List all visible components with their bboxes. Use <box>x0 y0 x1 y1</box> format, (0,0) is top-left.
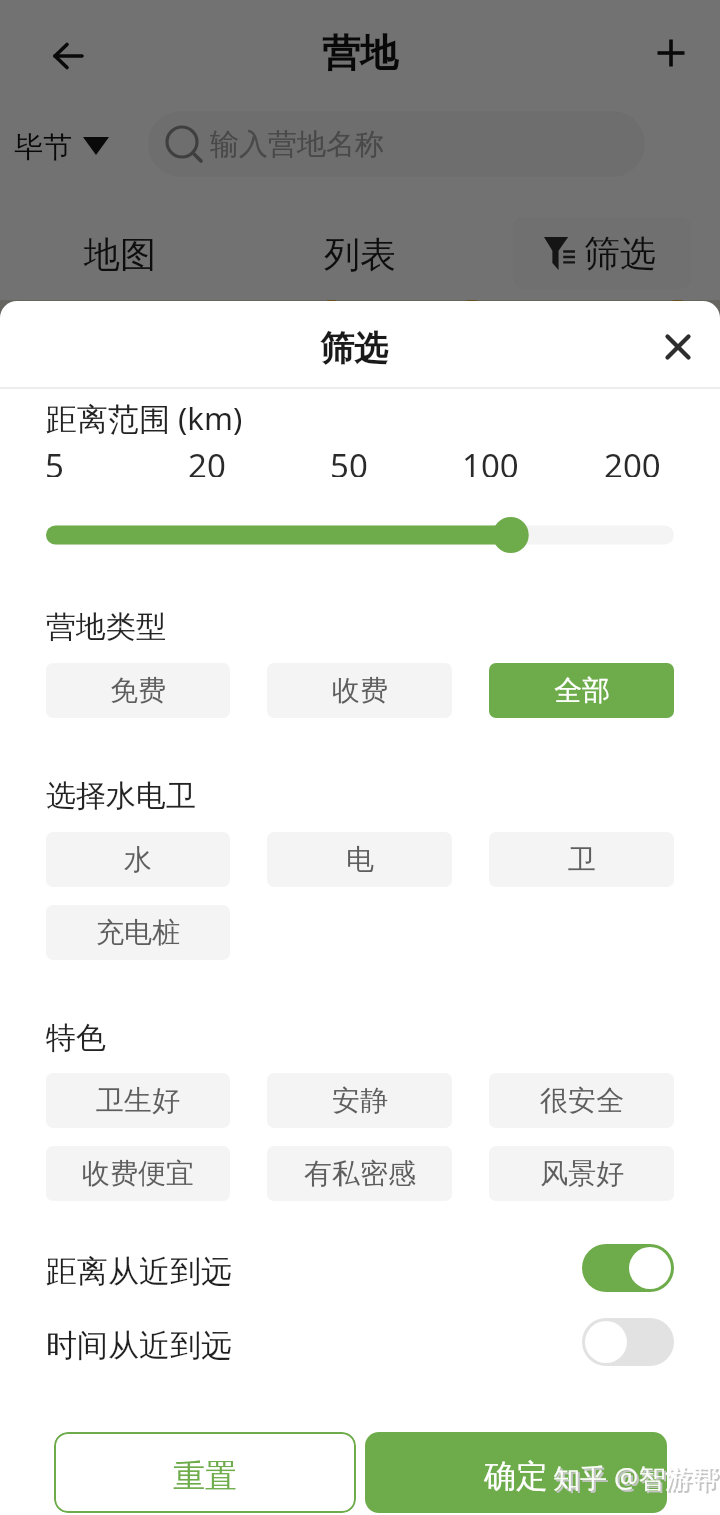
button[interactable]: 输入营地名称 <box>148 111 645 177</box>
staticText: 收费便宜 <box>82 1156 194 1191</box>
button[interactable]: Close <box>650 319 706 375</box>
staticText: 毕节 <box>14 129 72 163</box>
staticText: 卫生好 <box>96 1083 180 1118</box>
button[interactable]: 有私密感 <box>267 1146 452 1201</box>
staticText: 距离从近到远 <box>46 1252 232 1291</box>
staticText: 选择水电卫 <box>46 777 196 815</box>
staticText: 确定 <box>484 1456 548 1496</box>
button[interactable]: 卫 <box>489 832 674 887</box>
staticText: 列表 <box>324 232 396 277</box>
staticText: 免费 <box>110 673 166 708</box>
button[interactable]: Off <box>582 1318 674 1366</box>
button[interactable]: 电 <box>267 832 452 887</box>
button[interactable]: 免费 <box>46 663 230 718</box>
button[interactable]: 筛选 <box>513 217 691 289</box>
staticText: 营地类型 <box>46 608 166 646</box>
staticText: 收费 <box>332 673 388 708</box>
staticText: 电 <box>346 842 374 877</box>
button[interactable]: 安静 <box>267 1073 452 1128</box>
staticText: 输入营地名称 <box>210 126 384 163</box>
staticText: 20 <box>188 443 226 477</box>
staticText: 5 <box>45 443 64 477</box>
staticText: 特色 <box>46 1019 106 1057</box>
staticText: 地图 <box>84 232 156 277</box>
staticText: 时间从近到远 <box>46 1326 232 1365</box>
staticText: 安静 <box>332 1083 388 1118</box>
button[interactable]: 距离从近到远 <box>46 1234 674 1309</box>
staticText: 100 <box>462 443 519 477</box>
button[interactable]: 地图 <box>36 220 203 288</box>
button[interactable]: 列表 <box>276 220 443 288</box>
staticText: 很安全 <box>540 1083 624 1118</box>
staticText: 充电桩 <box>96 915 180 950</box>
button[interactable]: 风景好 <box>489 1146 674 1201</box>
button[interactable]: 收费 <box>267 663 452 718</box>
button[interactable]: 很安全 <box>489 1073 674 1128</box>
button[interactable]: 时间从近到远 <box>46 1309 674 1382</box>
staticText: 风景好 <box>540 1156 624 1191</box>
button[interactable]: 充电桩 <box>46 905 230 960</box>
staticText: 有私密感 <box>304 1156 416 1191</box>
button[interactable]: 全部 <box>489 663 674 718</box>
staticText: 卫 <box>568 842 596 877</box>
staticText: 距离范围 (km) <box>46 397 243 439</box>
button[interactable]: 确定 <box>365 1432 667 1513</box>
staticText: 知乎 @智游帮 <box>555 1461 720 1498</box>
staticText: 筛选 <box>584 231 656 276</box>
button[interactable]: Add <box>647 29 695 77</box>
button[interactable]: Back <box>43 26 103 86</box>
button[interactable]: 重置 <box>54 1432 356 1513</box>
button[interactable]: 收费便宜 <box>46 1146 230 1201</box>
staticText: 50 <box>330 443 368 477</box>
staticText: 筛选 <box>320 327 388 370</box>
staticText: 营地 <box>322 29 398 77</box>
staticText: 重置 <box>173 1456 237 1496</box>
button[interactable]: On <box>582 1244 674 1292</box>
staticText: 全部 <box>554 673 610 708</box>
staticText: 水 <box>124 842 152 877</box>
button[interactable]: 水 <box>46 832 230 887</box>
button[interactable]: 毕节 <box>14 129 109 163</box>
staticText: 200 <box>604 443 661 477</box>
button[interactable]: 卫生好 <box>46 1073 230 1128</box>
staticText: 知乎 @智游帮 <box>553 1459 720 1496</box>
